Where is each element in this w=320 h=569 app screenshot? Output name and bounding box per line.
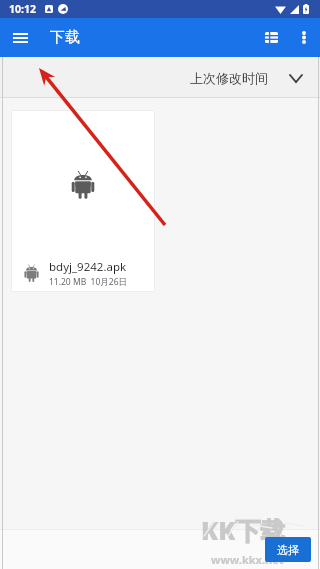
staticText: 选择 — [277, 543, 299, 557]
button[interactable]: Switch to list view — [255, 18, 288, 57]
staticText: www.kkx.net — [211, 552, 284, 567]
button[interactable]: 选择 — [265, 537, 311, 562]
button[interactable]: 上次修改时间 — [184, 64, 308, 92]
staticText: 11.20 MB 10月26日 — [49, 276, 128, 288]
staticText: bdyj_9242.apk — [49, 259, 127, 275]
button[interactable]: bdyj_9242.apk — [11, 110, 155, 292]
staticText: 上次修改时间 — [190, 70, 268, 86]
button[interactable]: Open navigation drawer — [0, 18, 41, 57]
staticText: 10:12 — [9, 2, 36, 16]
staticText: 下载 — [50, 28, 80, 47]
staticText: KK下载 — [201, 513, 286, 547]
button[interactable]: More options — [288, 18, 319, 57]
